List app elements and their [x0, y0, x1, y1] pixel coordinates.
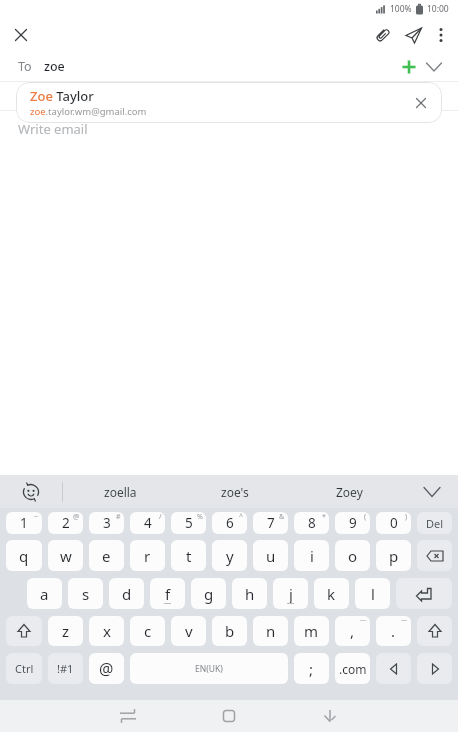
- staticText: v: [185, 621, 193, 641]
- staticText: 9: [349, 514, 357, 532]
- button[interactable]: .com: [335, 653, 370, 684]
- button[interactable]: [316, 702, 344, 730]
- staticText: —: [401, 616, 408, 624]
- staticText: @: [73, 512, 80, 522]
- staticText: .: [391, 621, 396, 641]
- button[interactable]: [0, 475, 62, 508]
- button[interactable]: Del: [417, 512, 452, 534]
- button[interactable]: o: [335, 540, 370, 571]
- button[interactable]: m: [294, 616, 329, 646]
- staticText: y: [226, 546, 234, 566]
- button[interactable]: 8: [294, 512, 329, 534]
- button[interactable]: [215, 702, 243, 730]
- button[interactable]: [6, 616, 42, 646]
- button[interactable]: EN(UK): [130, 653, 288, 684]
- staticText: /: [159, 512, 162, 522]
- button[interactable]: w: [48, 540, 83, 571]
- staticText: i: [310, 546, 314, 566]
- button[interactable]: r: [130, 540, 165, 571]
- button[interactable]: q: [6, 540, 42, 571]
- button[interactable]: ;: [294, 653, 329, 684]
- button[interactable]: [424, 57, 444, 77]
- staticText: s: [82, 584, 90, 604]
- button[interactable]: k: [314, 578, 349, 609]
- button[interactable]: [406, 475, 458, 508]
- staticText: g: [204, 584, 214, 604]
- staticText: @: [99, 658, 114, 680]
- button[interactable]: z: [48, 616, 83, 646]
- button[interactable]: p: [376, 540, 411, 571]
- button[interactable]: [417, 616, 452, 646]
- button[interactable]: c: [130, 616, 165, 646]
- button[interactable]: i: [294, 540, 329, 571]
- staticText: m: [304, 621, 319, 641]
- button[interactable]: [417, 540, 452, 571]
- staticText: 10:00: [427, 3, 449, 15]
- button[interactable]: [114, 702, 142, 730]
- button[interactable]: 5: [171, 512, 206, 534]
- button[interactable]: .: [376, 616, 411, 646]
- button[interactable]: b: [212, 616, 247, 646]
- button[interactable]: 6: [212, 512, 247, 534]
- button[interactable]: zoella: [63, 475, 178, 508]
- button[interactable]: [417, 653, 452, 684]
- staticText: h: [245, 584, 255, 604]
- button[interactable]: ,: [335, 616, 370, 646]
- button[interactable]: g: [191, 578, 226, 609]
- button[interactable]: [376, 653, 411, 684]
- staticText: p: [389, 546, 399, 566]
- button[interactable]: 7: [253, 512, 288, 534]
- button[interactable]: d: [109, 578, 144, 609]
- button[interactable]: [371, 23, 395, 47]
- button[interactable]: [432, 26, 450, 44]
- button[interactable]: j: [273, 578, 308, 609]
- button[interactable]: x: [89, 616, 124, 646]
- button[interactable]: [402, 23, 426, 47]
- staticText: zoe: [44, 58, 65, 75]
- button[interactable]: zoe's: [178, 475, 292, 508]
- button[interactable]: e: [89, 540, 124, 571]
- button[interactable]: @: [89, 653, 124, 684]
- staticText: &: [279, 512, 285, 522]
- button[interactable]: t: [171, 540, 206, 571]
- button[interactable]: u: [253, 540, 288, 571]
- staticText: Zoe Taylor: [30, 87, 94, 105]
- staticText: %: [197, 512, 203, 522]
- button[interactable]: [11, 25, 31, 45]
- staticText: 8: [308, 514, 316, 532]
- staticText: .com: [339, 661, 367, 677]
- button[interactable]: 2: [48, 512, 83, 534]
- staticText: 4: [144, 514, 152, 532]
- button[interactable]: f: [150, 578, 185, 609]
- button[interactable]: 0: [376, 512, 411, 534]
- staticText: #: [116, 512, 121, 522]
- button[interactable]: [412, 94, 430, 112]
- button[interactable]: s: [68, 578, 103, 609]
- button[interactable]: y: [212, 540, 247, 571]
- button[interactable]: Zoey: [292, 475, 406, 508]
- button[interactable]: 3: [89, 512, 124, 534]
- button[interactable]: 1: [6, 512, 42, 534]
- button[interactable]: h: [232, 578, 267, 609]
- button[interactable]: n: [253, 616, 288, 646]
- staticText: t: [186, 546, 192, 566]
- button[interactable]: [398, 56, 420, 78]
- button[interactable]: Zoe Taylor: [16, 82, 442, 123]
- staticText: f: [165, 584, 171, 604]
- button[interactable]: !#1: [48, 653, 83, 684]
- staticText: ,: [350, 621, 355, 641]
- staticText: ^: [239, 512, 244, 522]
- button[interactable]: 9: [335, 512, 370, 534]
- staticText: 7: [267, 514, 275, 532]
- button[interactable]: v: [171, 616, 206, 646]
- button[interactable]: Ctrl: [6, 653, 42, 684]
- button[interactable]: l: [355, 578, 390, 609]
- staticText: a: [40, 584, 49, 604]
- staticText: To: [18, 58, 32, 75]
- staticText: EN(UK): [195, 663, 223, 675]
- button[interactable]: 4: [130, 512, 165, 534]
- button[interactable]: [396, 578, 452, 609]
- button[interactable]: a: [27, 578, 62, 609]
- staticText: —: [360, 616, 367, 624]
- staticText: d: [122, 584, 132, 604]
